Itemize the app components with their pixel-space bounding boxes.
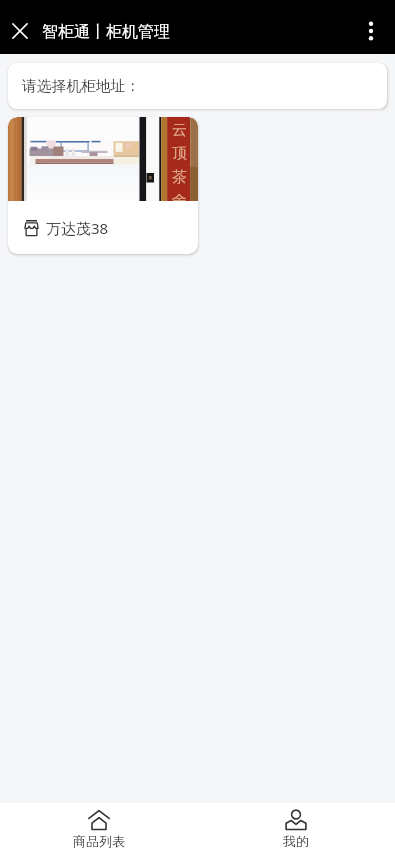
- button[interactable]: 我的: [197, 803, 395, 853]
- staticText: 舍: [172, 192, 187, 201]
- button[interactable]: 商品列表: [0, 803, 197, 853]
- staticText: 顶: [172, 144, 187, 163]
- button[interactable]: 请选择机柜地址：: [8, 63, 387, 109]
- staticText: 请选择机柜地址：: [22, 77, 141, 96]
- button[interactable]: Close: [0, 11, 40, 51]
- button[interactable]: 云: [8, 117, 198, 254]
- button[interactable]: More options: [351, 11, 391, 51]
- staticText: 云: [172, 121, 187, 140]
- staticText: 茶: [172, 168, 187, 187]
- staticText: 我的: [283, 833, 309, 849]
- staticText: 智柜通丨柜机管理: [42, 22, 170, 42]
- staticText: 商品列表: [73, 833, 125, 849]
- staticText: 万达茂38: [46, 218, 109, 238]
